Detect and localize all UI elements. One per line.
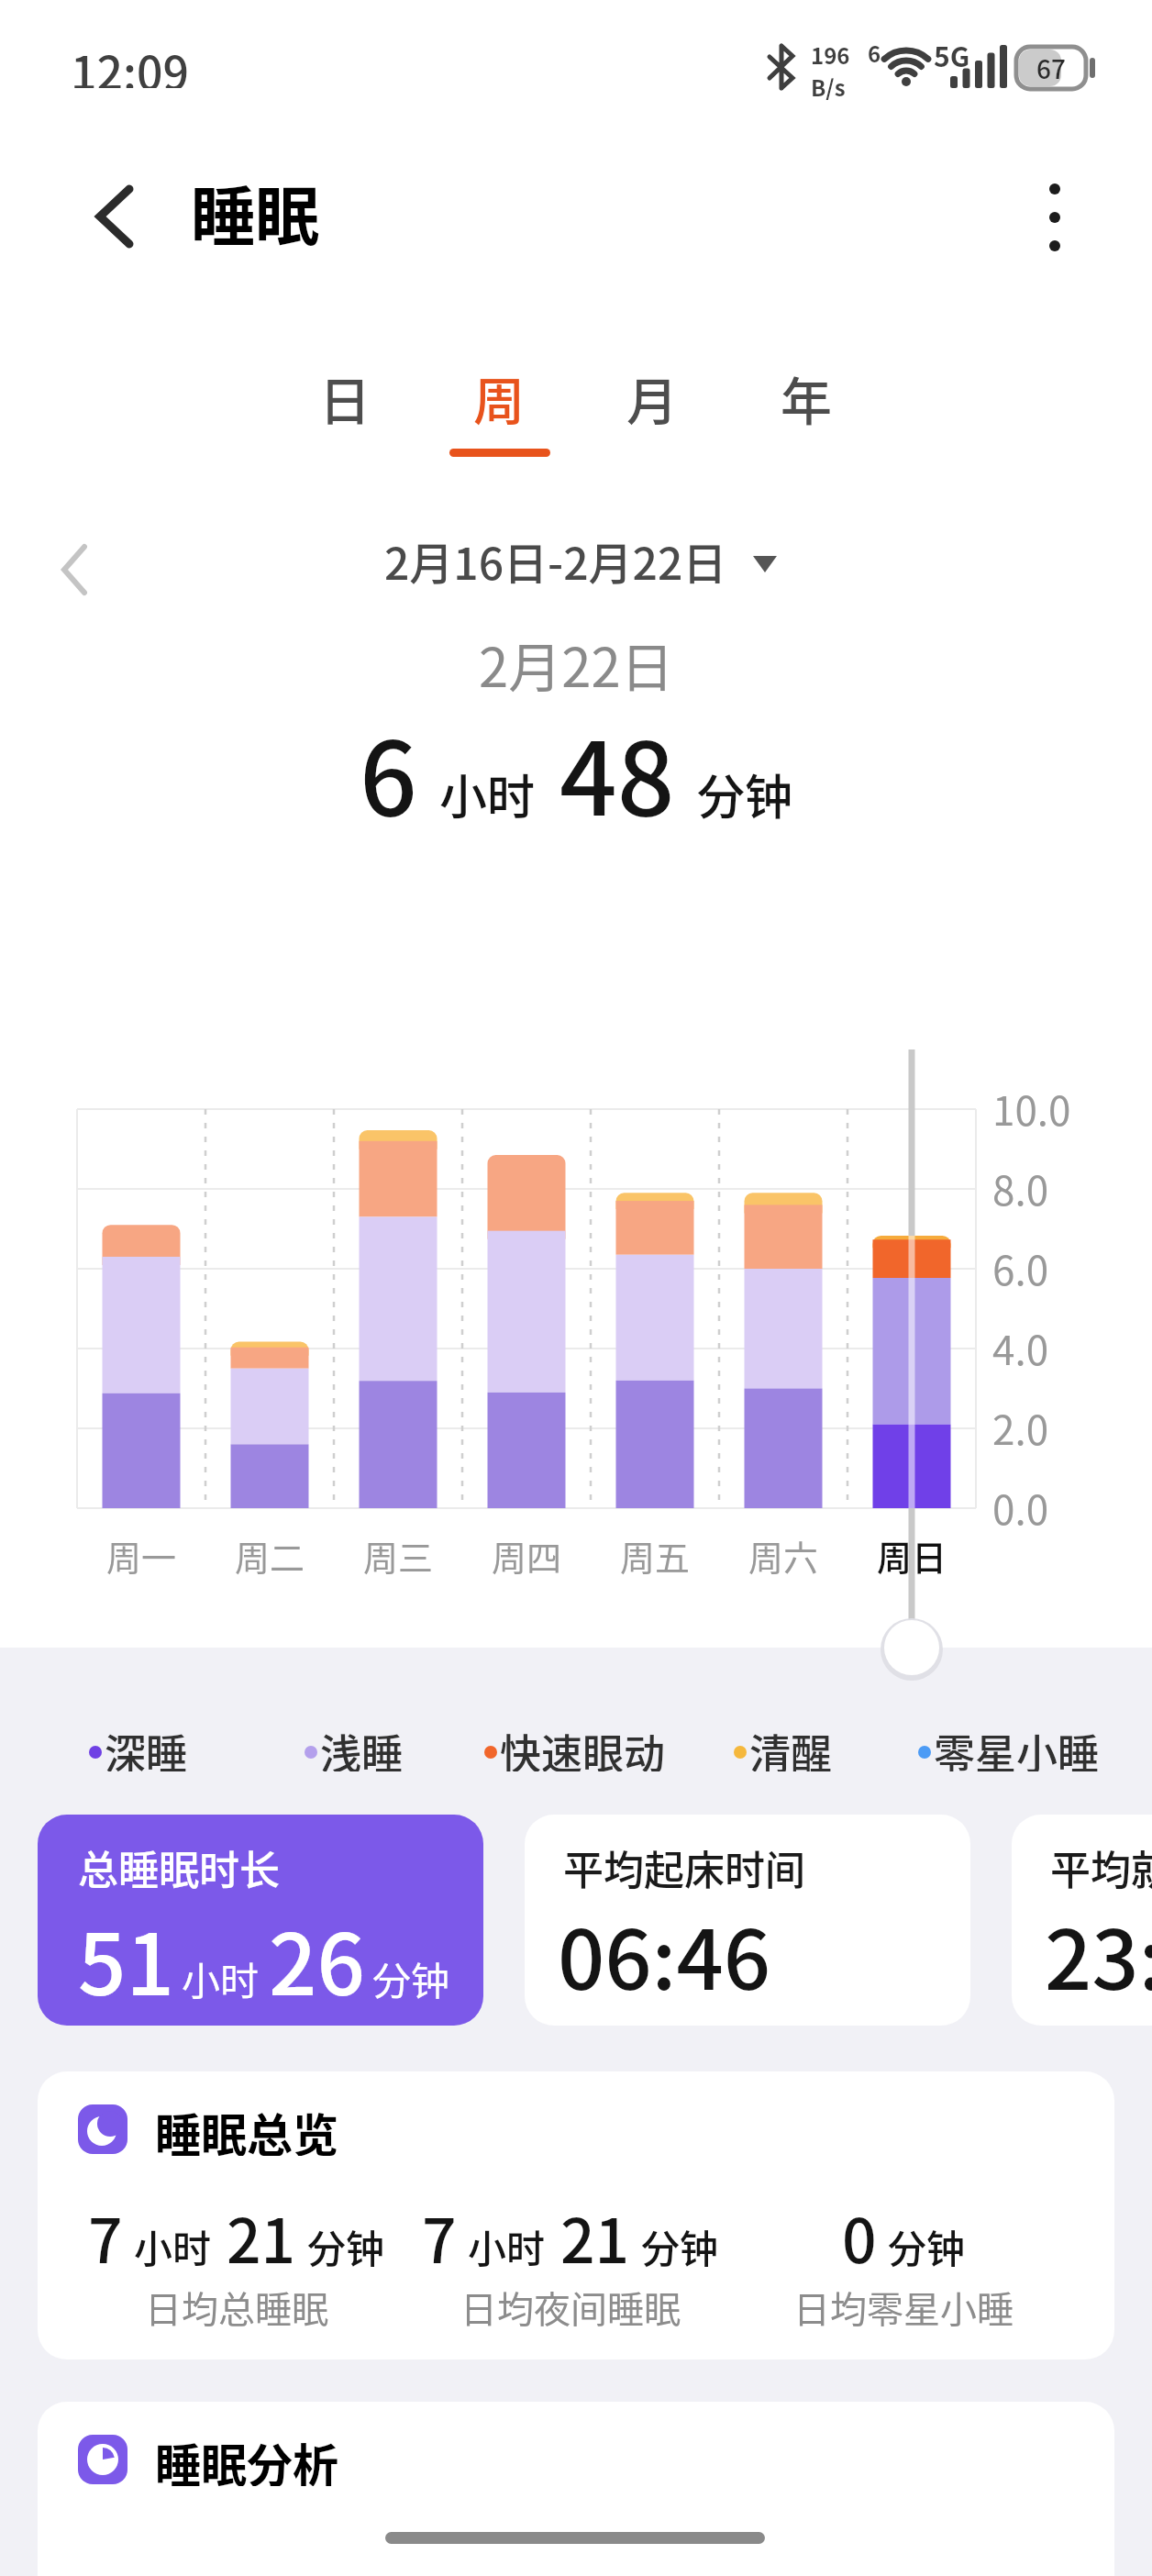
staticText: 7 [88,2193,123,2281]
staticText: 51 [78,1897,174,2019]
staticText: 67 [1036,50,1066,87]
staticText: 分钟 [697,760,793,828]
button[interactable] [78,176,161,259]
button[interactable]: 总睡眠时长 [38,1815,483,2026]
staticText: 睡眠 [191,166,319,249]
button[interactable] [1014,174,1098,259]
staticText: 快速眼动 [500,1722,666,1771]
staticText: 196 [811,39,850,71]
staticText: 周五 [620,1530,691,1580]
staticText: 2月22日 [479,626,674,694]
staticText: 5G [934,35,970,74]
staticText: 月 [626,361,678,432]
staticText: 睡眠分析 [155,2429,338,2486]
staticText: B/s [811,71,846,103]
staticText: 分钟 [372,1950,450,2006]
staticText: 周日 [877,1530,947,1580]
staticText: 7 [422,2193,457,2281]
staticText: 10.0 [992,1079,1071,1130]
staticText: 分钟 [307,2218,385,2274]
staticText: 周二 [235,1530,305,1580]
staticText: 周三 [363,1530,434,1580]
staticText: 日 [319,361,371,432]
button[interactable]: 2月16日-2月22日 [0,528,1152,585]
staticText: 总睡眠时长 [78,1838,280,1897]
staticText: 深睡 [105,1722,188,1771]
staticText: 平均就寝时间 [1050,1838,1152,1897]
staticText: 周四 [492,1530,562,1580]
staticText: 6 [360,698,417,844]
staticText: 6 [868,37,881,69]
staticText: 周 [473,361,525,432]
staticText: 分钟 [888,2218,966,2274]
staticText: 小时 [468,2218,546,2274]
staticText: 年 [781,361,832,432]
staticText: 12:09 [71,37,189,88]
staticText: 清醒 [749,1722,833,1771]
staticText: 小时 [134,2218,212,2274]
staticText: 4.0 [992,1318,1049,1370]
staticText: 睡眠总览 [155,2099,338,2156]
button[interactable]: 平均起床时间 [525,1815,970,2026]
staticText: 周六 [748,1530,819,1580]
staticText: 48 [559,698,675,844]
staticText: 分钟 [641,2218,719,2274]
button[interactable]: 平均就寝时间 [1012,1815,1152,2026]
staticText: 21 [227,2193,296,2281]
staticText: 23:30 [1045,1894,1152,2014]
staticText: 8.0 [992,1159,1049,1210]
staticText: 日均夜间睡眠 [460,2281,681,2334]
button[interactable]: 睡眠总览 [38,2071,1114,2359]
button[interactable]: 年 [742,361,870,432]
staticText: 小时 [182,1950,260,2006]
staticText: 2月16日-2月22日 [384,528,727,585]
staticText: 日均总睡眠 [145,2281,328,2334]
staticText: 浅睡 [320,1722,404,1771]
staticText: 21 [560,2193,630,2281]
staticText: 2.0 [992,1398,1049,1449]
staticText: 0 [842,2193,877,2281]
button[interactable]: 睡眠分析 [38,2402,1114,2576]
staticText: 日均零星小睡 [793,2281,1014,2334]
button[interactable]: 周 [435,361,563,432]
staticText: 06:46 [558,1894,771,2014]
button[interactable]: 日 [281,361,409,432]
staticText: 周一 [106,1530,177,1580]
staticText: 小时 [439,760,536,828]
staticText: 6.0 [992,1238,1049,1290]
staticText: 零星小睡 [934,1722,1100,1771]
staticText: 平均起床时间 [563,1838,805,1897]
button[interactable]: 月 [588,361,716,432]
staticText: 26 [269,1897,365,2019]
staticText: 0.0 [992,1478,1049,1529]
